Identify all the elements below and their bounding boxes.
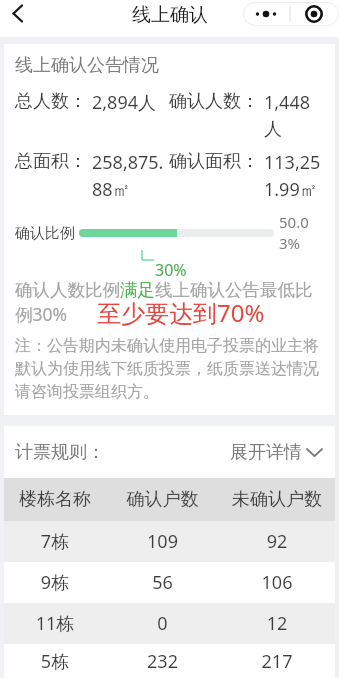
staticText: 11栋 — [4, 611, 106, 636]
staticText: 注：公告期内未确认使用电子投票的业主将默认为使用线下纸质投票，纸质票送达情况请咨… — [15, 336, 324, 402]
staticText: 50.0 3% — [279, 212, 324, 254]
staticText: 确认人数比例满足线上确认公告最低比 例30% — [15, 279, 313, 326]
staticText: 217 — [219, 649, 335, 674]
staticText: 12 — [219, 611, 335, 636]
button[interactable]: 7栋 — [4, 521, 335, 562]
staticText: 确认户数 — [106, 488, 219, 511]
button[interactable]: Back — [0, 0, 40, 37]
staticText: 232 — [106, 649, 219, 674]
staticText: 2,894人 — [92, 90, 169, 115]
staticText: 计票规则： — [15, 441, 105, 464]
staticText: 0 — [106, 611, 219, 636]
staticText: 258,875. 88㎡ — [92, 150, 169, 202]
staticText: 106 — [219, 570, 335, 595]
staticText: 113,25 1.99㎡ — [264, 150, 324, 202]
staticText: 5栋 — [4, 649, 106, 674]
button[interactable]: 5栋 — [4, 644, 335, 678]
staticText: 总面积： — [15, 150, 87, 173]
staticText: 至少要达到70% — [97, 296, 265, 329]
staticText: 确认比例 — [15, 224, 75, 243]
staticText: 楼栋名称 — [4, 488, 106, 511]
staticText: 确认面积： — [169, 150, 259, 173]
button[interactable]: 9栋 — [4, 562, 335, 603]
staticText: 1,448 人 — [264, 90, 324, 141]
staticText: 109 — [106, 529, 219, 554]
staticText: 总人数： — [15, 90, 87, 113]
button[interactable]: 11栋 — [4, 603, 335, 644]
staticText: 30% — [155, 259, 187, 281]
staticText: 确认人数： — [169, 90, 259, 113]
staticText: 92 — [219, 529, 335, 554]
staticText: 线上确认 — [132, 3, 208, 27]
button[interactable]: 展开详情 — [230, 441, 323, 464]
staticText: 线上确认公告情况 — [15, 54, 159, 77]
staticText: 9栋 — [4, 570, 106, 595]
staticText: 56 — [106, 570, 219, 595]
staticText: 7栋 — [4, 529, 106, 554]
staticText: 未确认户数 — [219, 488, 335, 511]
button[interactable]: More options — [243, 2, 339, 26]
staticText: 展开详情 — [230, 441, 302, 464]
